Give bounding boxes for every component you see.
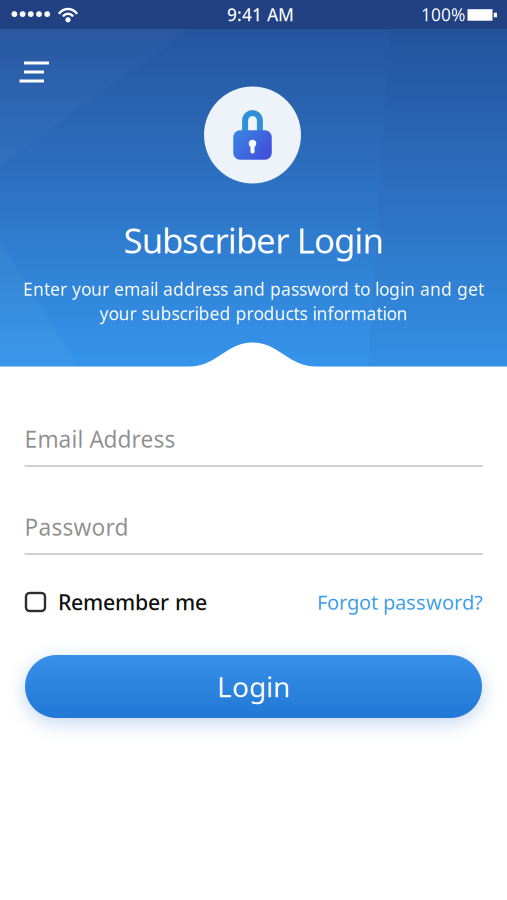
staticText: 100% bbox=[421, 3, 465, 26]
staticText: Password bbox=[24, 512, 128, 542]
button[interactable]: Password bbox=[24, 512, 482, 542]
staticText: Subscriber Login bbox=[123, 217, 383, 263]
button[interactable]: Menu bbox=[19, 52, 63, 88]
button[interactable]: Forgot password? bbox=[317, 589, 483, 615]
staticText: Remember me bbox=[58, 588, 207, 616]
staticText: Login bbox=[217, 668, 290, 705]
staticText: Email Address bbox=[24, 424, 175, 454]
staticText: Enter your email address and password to… bbox=[23, 277, 484, 300]
button[interactable]: Email Address bbox=[24, 424, 482, 454]
staticText: 9:41 AM bbox=[227, 3, 294, 26]
staticText: your subscribed products information bbox=[99, 302, 407, 325]
button[interactable]: Remember me bbox=[26, 588, 207, 616]
staticText: Forgot password? bbox=[317, 589, 483, 615]
button[interactable]: Login bbox=[25, 655, 482, 718]
